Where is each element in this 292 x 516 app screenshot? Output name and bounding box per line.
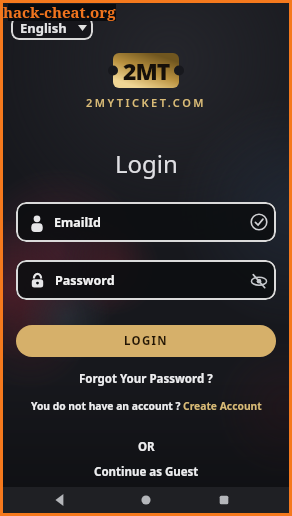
button[interactable]: Continue as Guest bbox=[0, 464, 292, 480]
staticText: You do not have an account ? Create Acco… bbox=[31, 399, 262, 413]
staticText: Password bbox=[55, 272, 115, 289]
button[interactable]: You do not have an account ? Create Acco… bbox=[0, 399, 292, 413]
staticText: 2MYTICKET.COM bbox=[86, 95, 207, 110]
button[interactable]: Password bbox=[16, 260, 276, 300]
staticText: Forgot Your Password ? bbox=[79, 371, 213, 387]
button[interactable] bbox=[218, 494, 230, 506]
button[interactable]: LOGIN bbox=[16, 325, 276, 357]
button[interactable] bbox=[140, 494, 152, 506]
button[interactable]: EmailId bbox=[16, 202, 276, 242]
button[interactable]: English bbox=[11, 16, 93, 40]
staticText: OR bbox=[138, 439, 155, 455]
staticText: English bbox=[20, 19, 67, 37]
staticText: 2MT bbox=[123, 55, 170, 86]
staticText: EmailId bbox=[54, 214, 101, 231]
staticText: Continue as Guest bbox=[94, 464, 199, 480]
button[interactable]: Forgot Your Password ? bbox=[0, 371, 292, 387]
button[interactable] bbox=[54, 494, 66, 506]
staticText: LOGIN bbox=[124, 333, 168, 349]
staticText: Login bbox=[115, 147, 178, 180]
staticText: hack-cheat.org bbox=[3, 2, 116, 22]
